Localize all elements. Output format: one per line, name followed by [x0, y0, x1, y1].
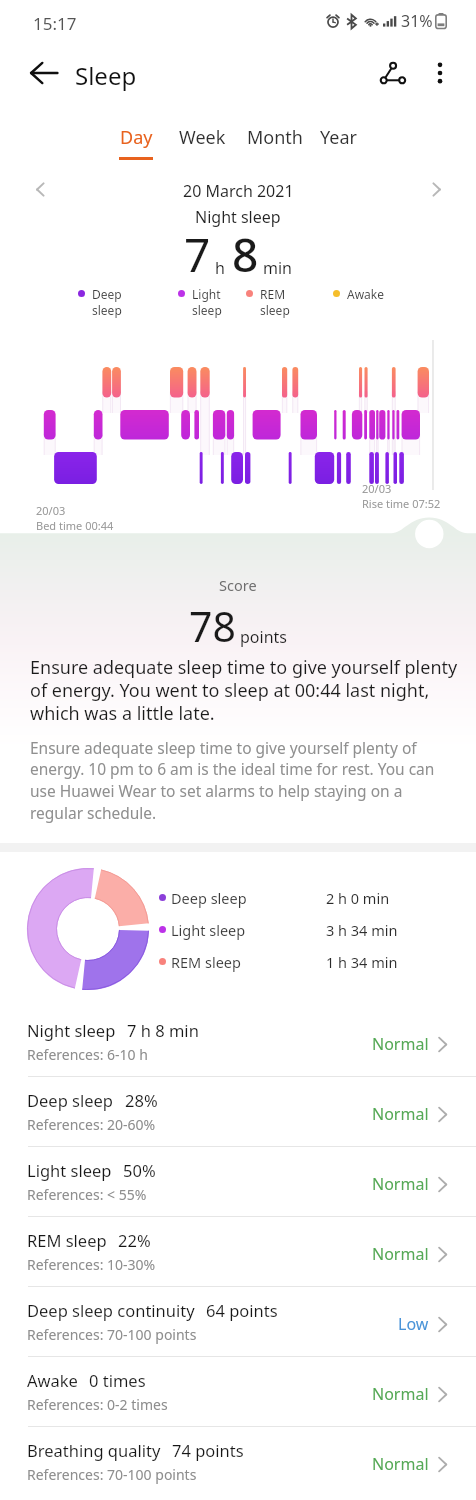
- button[interactable]: Deep sleep: [0, 1076, 476, 1146]
- staticText: References: 6-10 h: [27, 1045, 148, 1064]
- staticText: REM: [260, 286, 286, 302]
- staticText: 78: [189, 598, 236, 654]
- staticText: Night sleep: [27, 1019, 116, 1041]
- staticText: Night sleep: [195, 206, 281, 228]
- button[interactable]: Deep sleep continuity: [0, 1286, 476, 1356]
- button[interactable]: Awake: [0, 1356, 476, 1426]
- staticText: Month: [247, 125, 303, 150]
- staticText: sleep: [260, 302, 290, 318]
- staticText: Week: [179, 125, 226, 150]
- staticText: Sleep: [75, 59, 137, 92]
- staticText: Normal: [372, 1173, 429, 1195]
- staticText: References: 0-2 times: [27, 1395, 168, 1414]
- staticText: Rise time 07:52: [362, 496, 441, 511]
- staticText: Year: [320, 125, 357, 150]
- staticText: References: 70-100 points: [27, 1325, 197, 1344]
- button[interactable]: Month: [244, 125, 306, 157]
- staticText: References: < 55%: [27, 1185, 147, 1204]
- staticText: Ensure adequate sleep time to give yours…: [30, 655, 462, 725]
- staticText: Score: [219, 575, 257, 595]
- staticText: References: 10-30%: [27, 1255, 156, 1274]
- staticText: 20/03: [362, 481, 392, 496]
- staticText: Light sleep: [171, 920, 246, 940]
- staticText: Light sleep: [27, 1159, 112, 1181]
- button[interactable]: REM sleep: [0, 1216, 476, 1286]
- staticText: Bed time 00:44: [36, 518, 114, 533]
- staticText: h: [215, 257, 225, 279]
- staticText: Ensure adequate sleep time to give yours…: [30, 737, 448, 824]
- staticText: sleep: [92, 302, 122, 318]
- staticText: Deep sleep continuity: [27, 1299, 195, 1321]
- staticText: 15:17: [33, 12, 77, 35]
- staticText: 22%: [118, 1229, 151, 1251]
- staticText: 20/03: [36, 503, 66, 518]
- staticText: Normal: [372, 1243, 429, 1265]
- staticText: 31%: [401, 10, 433, 32]
- staticText: Awake: [27, 1369, 78, 1391]
- staticText: min: [263, 257, 292, 279]
- staticText: 64 points: [206, 1299, 278, 1321]
- staticText: References: 20-60%: [27, 1115, 156, 1134]
- staticText: Deep sleep: [171, 888, 247, 908]
- staticText: Deep sleep: [27, 1089, 114, 1111]
- button[interactable]: More options: [417, 50, 463, 96]
- button[interactable]: Back: [21, 50, 67, 96]
- button[interactable]: Day: [116, 125, 156, 160]
- staticText: 8: [232, 223, 259, 286]
- staticText: Deep: [92, 286, 122, 302]
- button[interactable]: Week: [176, 125, 229, 157]
- staticText: 74 points: [172, 1439, 244, 1461]
- button[interactable]: Night sleep: [0, 1006, 476, 1076]
- button[interactable]: Next day: [419, 172, 453, 206]
- button[interactable]: Previous day: [23, 172, 57, 206]
- staticText: 28%: [125, 1089, 158, 1111]
- button[interactable]: Breathing quality: [0, 1426, 476, 1496]
- staticText: Light: [192, 286, 221, 302]
- staticText: 0 times: [89, 1369, 146, 1391]
- staticText: REM sleep: [171, 952, 241, 972]
- staticText: Normal: [372, 1033, 429, 1055]
- staticText: Normal: [372, 1453, 429, 1475]
- staticText: 3 h 34 min: [326, 920, 398, 940]
- staticText: 7 h 8 min: [127, 1019, 199, 1041]
- staticText: sleep: [192, 302, 222, 318]
- staticText: Awake: [347, 286, 385, 302]
- button[interactable]: Year: [317, 125, 360, 157]
- staticText: REM sleep: [27, 1229, 107, 1251]
- staticText: References: 70-100 points: [27, 1465, 197, 1484]
- staticText: 7: [184, 223, 211, 286]
- button[interactable]: Light sleep: [0, 1146, 476, 1216]
- staticText: 2 h 0 min: [326, 888, 390, 908]
- staticText: Normal: [372, 1383, 429, 1405]
- staticText: 50%: [123, 1159, 156, 1181]
- staticText: Low: [398, 1313, 429, 1335]
- staticText: Normal: [372, 1103, 429, 1125]
- staticText: 20 March 2021: [183, 180, 294, 202]
- staticText: points: [240, 626, 287, 648]
- button[interactable]: Share: [368, 50, 414, 96]
- staticText: 1 h 34 min: [326, 952, 398, 972]
- staticText: Day: [120, 125, 153, 150]
- staticText: Breathing quality: [27, 1439, 161, 1461]
